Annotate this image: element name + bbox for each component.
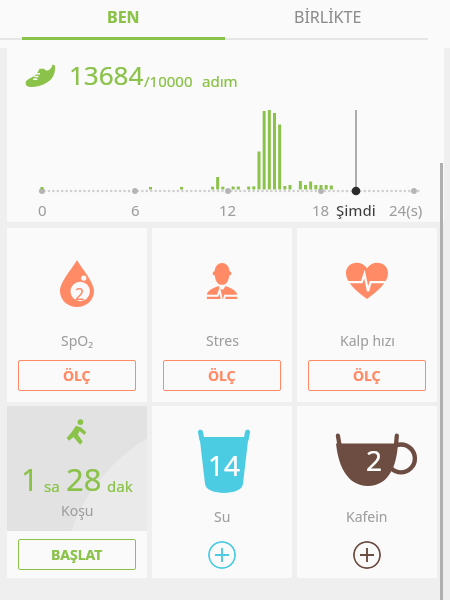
- staticText: 0: [38, 200, 47, 220]
- staticText: ÖLÇ: [353, 366, 381, 385]
- staticText: BAŞLAT: [51, 545, 103, 564]
- button[interactable]: 2: [297, 406, 437, 578]
- staticText: /10000: [144, 71, 193, 91]
- button[interactable]: BEN: [22, 0, 225, 37]
- staticText: Kalp hızı: [340, 331, 395, 350]
- button[interactable]: 1: [7, 406, 147, 578]
- button[interactable]: Su ekle: [208, 541, 236, 569]
- button[interactable]: 2: [7, 228, 147, 402]
- staticText: sa: [44, 476, 60, 496]
- button[interactable]: Stres: [152, 228, 292, 402]
- button[interactable]: Kafein ekle: [353, 541, 381, 569]
- staticText: Şimdi: [336, 200, 376, 220]
- staticText: 1: [21, 458, 39, 500]
- staticText: ÖLÇ: [208, 366, 236, 385]
- staticText: BEN: [107, 6, 140, 28]
- button[interactable]: ÖLÇ: [18, 360, 136, 391]
- staticText: dak: [107, 476, 133, 496]
- staticText: 28: [66, 458, 102, 500]
- button[interactable]: BİRLİKTE: [225, 0, 430, 37]
- staticText: 24(s): [389, 200, 423, 220]
- button[interactable]: 14: [152, 406, 292, 578]
- staticText: BİRLİKTE: [294, 6, 362, 28]
- button[interactable]: ÖLÇ: [308, 360, 426, 391]
- staticText: 13684: [69, 57, 144, 92]
- staticText: 12: [219, 200, 237, 220]
- button[interactable]: Kalp hızı: [297, 228, 437, 402]
- button[interactable]: BAŞLAT: [18, 539, 136, 570]
- staticText: 18: [312, 200, 330, 220]
- staticText: Su: [214, 507, 231, 526]
- button[interactable]: 13684: [7, 48, 444, 222]
- staticText: Stres: [206, 331, 239, 350]
- staticText: adım: [202, 71, 238, 91]
- staticText: Koşu: [61, 501, 94, 520]
- staticText: Kafein: [346, 507, 388, 526]
- staticText: SpO₂: [61, 331, 94, 350]
- staticText: ÖLÇ: [63, 366, 91, 385]
- staticText: 14: [208, 446, 241, 484]
- button[interactable]: ÖLÇ: [163, 360, 281, 391]
- staticText: 6: [131, 200, 140, 220]
- staticText: 2: [75, 283, 85, 303]
- staticText: 2: [366, 441, 383, 479]
